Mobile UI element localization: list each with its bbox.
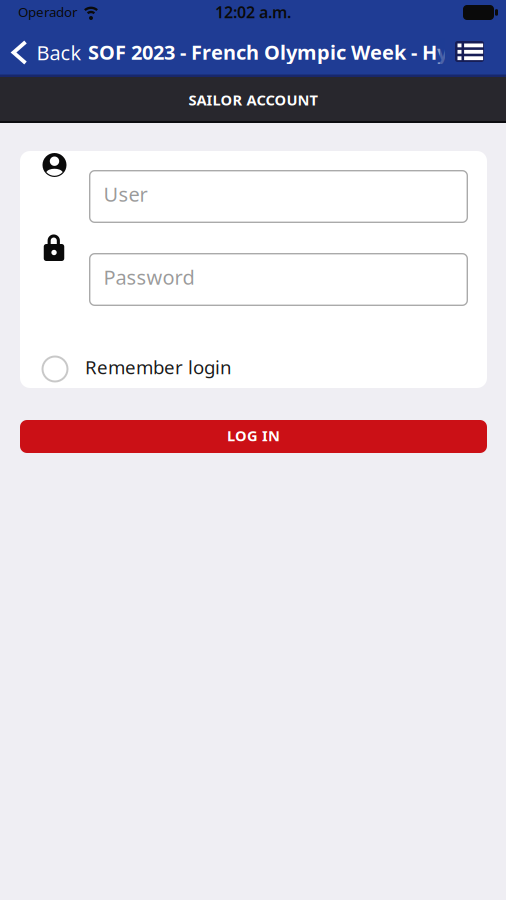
staticText: 12:02 a.m. <box>215 1 291 23</box>
staticText: Operador <box>18 3 78 21</box>
staticText: Password <box>103 264 194 290</box>
button[interactable]: LOG IN <box>20 420 487 453</box>
button[interactable]: Menu <box>455 41 484 62</box>
staticText: SOF 2023 - French Olympic Week - Hy <box>88 39 448 65</box>
button[interactable]: Password <box>89 253 468 306</box>
staticText: User <box>103 181 147 207</box>
button[interactable]: Remember login <box>41 355 232 382</box>
staticText: LOG IN <box>227 426 280 445</box>
staticText: Back <box>36 39 81 66</box>
button[interactable]: User <box>89 170 468 223</box>
button[interactable]: Back <box>9 40 81 64</box>
staticText: Remember login <box>85 355 232 379</box>
staticText: SAILOR ACCOUNT <box>188 90 317 109</box>
